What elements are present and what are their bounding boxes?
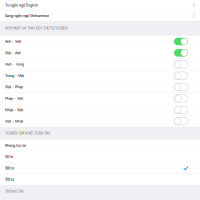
button[interactable]: Anh - Việt bbox=[0, 36, 200, 47]
staticText: Nhật - Việt bbox=[5, 108, 23, 112]
staticText: Không lưu lại bbox=[5, 143, 26, 148]
button[interactable]: 150 từ bbox=[0, 174, 200, 185]
button[interactable]: 100 từ bbox=[0, 163, 200, 174]
staticText: Việt - Nhật bbox=[5, 119, 23, 123]
staticText: Từ ngôn ngữ English bbox=[5, 3, 38, 7]
button[interactable]: Pháp - Việt bbox=[0, 93, 200, 104]
staticText: THÔNG TIN bbox=[5, 190, 24, 194]
button[interactable]: Việt - Pháp bbox=[0, 81, 200, 93]
staticText: Anh - Việt bbox=[5, 39, 21, 44]
button[interactable]: Không lưu lại bbox=[0, 140, 200, 151]
button[interactable]: Việt - Trung bbox=[0, 59, 200, 70]
staticText: Sang ngôn ngữ Vietnamese bbox=[5, 14, 49, 18]
button[interactable]: Trung - Việt bbox=[0, 70, 200, 81]
staticText: Pháp - Việt bbox=[5, 96, 23, 101]
button[interactable]: Từ ngôn ngữ English bbox=[0, 0, 200, 10]
staticText: Trung - Việt bbox=[5, 73, 24, 78]
staticText: Việt - Anh bbox=[5, 51, 21, 55]
staticText: TỪ ĐIỂN GHI NHỚ TỪ ĐÃ TRA bbox=[5, 131, 50, 135]
staticText: 100 từ bbox=[5, 166, 14, 170]
button[interactable]: Việt - Anh bbox=[0, 47, 200, 58]
staticText: Việt - Pháp bbox=[5, 85, 23, 89]
staticText: Việt - Trung bbox=[5, 62, 24, 66]
button[interactable]: Việt - Nhật bbox=[0, 116, 200, 127]
button[interactable]: Nhật - Việt bbox=[0, 104, 200, 115]
staticText: 150 từ bbox=[5, 177, 14, 182]
button[interactable]: 50 từ bbox=[0, 151, 200, 162]
button[interactable]: Sang ngôn ngữ Vietnamese bbox=[0, 11, 200, 21]
staticText: 50 từ bbox=[5, 155, 13, 159]
staticText: KÍCH HOẠT VÀ THAY ĐỔI THỨ TỰ TỪ ĐIỂN bbox=[5, 26, 68, 30]
